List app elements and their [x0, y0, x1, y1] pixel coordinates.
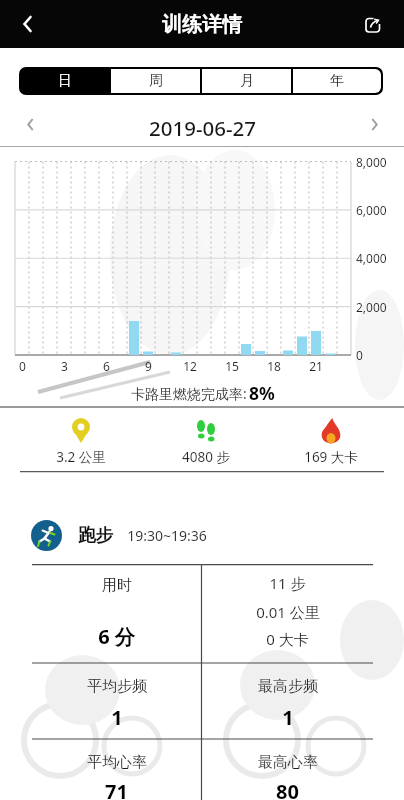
staticText: 4,000: [356, 250, 387, 266]
staticText: 平均心率: [87, 753, 147, 772]
button[interactable]: [18, 112, 42, 136]
staticText: 8,000: [356, 154, 387, 170]
staticText: 4080 步: [182, 448, 230, 466]
staticText: 12: [183, 358, 197, 374]
staticText: 周: [149, 72, 163, 90]
button[interactable]: 4080 步: [143, 408, 268, 471]
staticText: 2,000: [356, 299, 387, 315]
staticText: 2019-06-27: [149, 114, 256, 142]
button[interactable]: 3.2 公里: [19, 408, 143, 471]
staticText: 训练详情: [162, 12, 242, 37]
staticText: 最高步频: [258, 677, 318, 696]
staticText: 11 步: [269, 573, 306, 593]
staticText: 0: [356, 347, 363, 363]
button[interactable]: 跑步: [31, 519, 207, 551]
staticText: 年: [330, 72, 344, 90]
staticText: 21: [309, 358, 323, 374]
staticText: 15: [225, 358, 239, 374]
staticText: 日: [58, 72, 72, 90]
staticText: 19:30~19:36: [127, 526, 207, 545]
staticText: 跑步: [78, 524, 113, 546]
staticText: 1: [111, 704, 123, 731]
button[interactable]: 月: [202, 69, 291, 93]
staticText: 用时: [102, 576, 132, 595]
staticText: 3.2 公里: [56, 448, 106, 466]
staticText: 80: [276, 778, 299, 800]
staticText: 18: [267, 358, 281, 374]
button[interactable]: 169 大卡: [268, 408, 393, 471]
staticText: 1: [282, 704, 294, 731]
staticText: 9: [145, 358, 152, 374]
staticText: 71: [105, 778, 128, 800]
button[interactable]: [14, 10, 42, 38]
staticText: 169 大卡: [304, 448, 358, 466]
staticText: 0: [19, 358, 26, 374]
staticText: 月: [240, 72, 254, 90]
staticText: 最高心率: [258, 753, 318, 772]
staticText: 3: [61, 358, 68, 374]
button[interactable]: 年: [293, 69, 381, 93]
button[interactable]: [360, 11, 386, 37]
staticText: 卡路里燃烧完成率:: [129, 384, 249, 403]
staticText: 8%: [249, 381, 275, 405]
staticText: 平均步频: [87, 677, 147, 696]
staticText: 0.01 公里: [256, 602, 320, 622]
button[interactable]: 周: [111, 69, 200, 93]
button[interactable]: 日: [21, 69, 109, 93]
staticText: 0 大卡: [266, 629, 309, 649]
staticText: 6,000: [356, 202, 387, 218]
button[interactable]: [362, 112, 386, 136]
staticText: 6: [103, 358, 110, 374]
staticText: 6 分: [98, 623, 135, 650]
